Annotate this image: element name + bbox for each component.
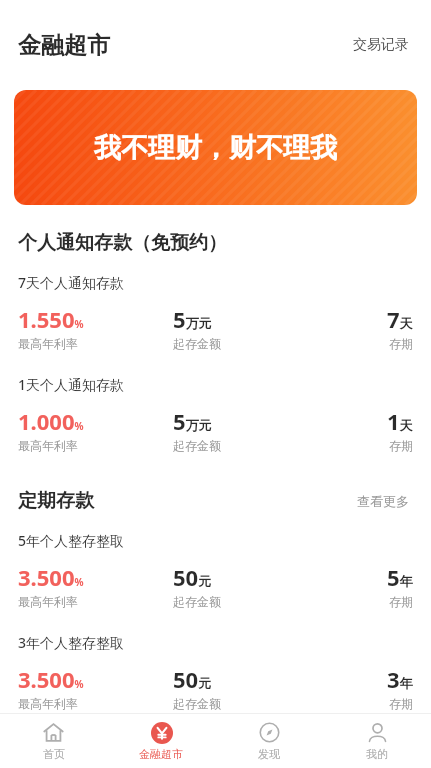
staticText: 起存金额 xyxy=(173,336,221,351)
button[interactable]: 发现 xyxy=(215,714,323,768)
staticText: 5万元 xyxy=(173,304,212,334)
staticText: 50元 xyxy=(173,562,212,592)
staticText: 最高年利率 xyxy=(18,594,78,609)
staticText: 我的 xyxy=(366,747,388,761)
staticText: 1.000% xyxy=(18,406,84,436)
staticText: 定期存款 xyxy=(18,489,94,513)
staticText: 首页 xyxy=(43,747,65,761)
button[interactable]: 金融超市 xyxy=(107,714,215,768)
button[interactable]: 7天个人通知存款 xyxy=(0,273,431,351)
staticText: 3年 xyxy=(387,664,413,694)
staticText: 存期 xyxy=(389,438,413,453)
staticText: 起存金额 xyxy=(173,594,221,609)
staticText: 1天个人通知存款 xyxy=(18,375,125,394)
staticText: 最高年利率 xyxy=(18,336,78,351)
staticText: 查看更多 xyxy=(357,493,409,509)
staticText: 3.500% xyxy=(18,562,84,592)
button[interactable]: 5年个人整存整取 xyxy=(0,531,431,609)
button[interactable]: 查看更多 xyxy=(353,489,413,513)
button[interactable]: 我不理财，财不理我 xyxy=(14,90,417,205)
staticText: 5万元 xyxy=(173,406,212,436)
button[interactable]: 3年个人整存整取 xyxy=(0,633,431,711)
staticText: 存期 xyxy=(389,594,413,609)
staticText: 1.550% xyxy=(18,304,84,334)
staticText: 1天 xyxy=(387,406,413,436)
staticText: 交易记录 xyxy=(353,36,409,54)
staticText: 7天个人通知存款 xyxy=(18,273,125,292)
staticText: 最高年利率 xyxy=(18,438,78,453)
staticText: 最高年利率 xyxy=(18,696,78,711)
staticText: 3年个人整存整取 xyxy=(18,633,125,652)
staticText: 5年 xyxy=(387,562,413,592)
staticText: 金融超市 xyxy=(18,31,110,60)
button[interactable]: 交易记录 xyxy=(349,32,413,58)
staticText: 我不理财，财不理我 xyxy=(94,131,337,165)
button[interactable]: 我的 xyxy=(323,714,431,768)
staticText: 金融超市 xyxy=(139,747,183,761)
staticText: 起存金额 xyxy=(173,696,221,711)
staticText: 7天 xyxy=(387,304,413,334)
staticText: 存期 xyxy=(389,336,413,351)
button[interactable]: 1天个人通知存款 xyxy=(0,375,431,453)
staticText: 3.500% xyxy=(18,664,84,694)
staticText: 起存金额 xyxy=(173,438,221,453)
staticText: 5年个人整存整取 xyxy=(18,531,125,550)
button[interactable]: 首页 xyxy=(0,714,107,768)
staticText: 50元 xyxy=(173,664,212,694)
staticText: 存期 xyxy=(389,696,413,711)
staticText: 发现 xyxy=(258,747,280,761)
staticText: 个人通知存款（免预约） xyxy=(18,231,227,255)
